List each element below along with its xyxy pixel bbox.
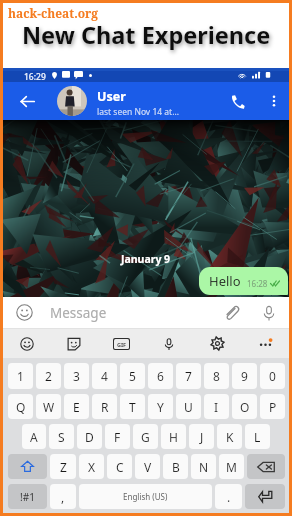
button[interactable]: V xyxy=(135,454,160,479)
staticText: 7 xyxy=(185,368,192,384)
button[interactable]: N xyxy=(191,454,216,479)
staticText: S xyxy=(58,429,65,445)
staticText: 9 xyxy=(241,368,248,384)
staticText: Z xyxy=(60,459,67,475)
button[interactable]: Z xyxy=(50,454,76,479)
button[interactable]: 2 xyxy=(36,363,61,389)
button[interactable]: 4 xyxy=(92,363,117,389)
button[interactable]: I xyxy=(204,394,229,419)
button[interactable]: Voice message xyxy=(249,297,289,328)
button[interactable]: Attach xyxy=(213,297,249,328)
staticText: V xyxy=(144,459,152,475)
staticText: hack-cheat.org xyxy=(8,5,99,21)
button[interactable]: More options xyxy=(263,82,285,120)
staticText: 16:29 xyxy=(24,71,46,83)
staticText: 16:28 xyxy=(247,278,268,289)
staticText: last seen Nov 14 at... xyxy=(97,106,180,118)
staticText: 0 xyxy=(269,368,276,384)
staticText: P xyxy=(269,399,277,415)
button[interactable]: 9 xyxy=(232,363,257,389)
button[interactable]: B xyxy=(163,454,188,479)
button[interactable]: D xyxy=(77,424,102,449)
staticText: E xyxy=(73,399,80,415)
button[interactable]: Stickers xyxy=(50,329,97,358)
staticText: Message xyxy=(50,304,217,322)
staticText: User xyxy=(97,88,126,105)
button[interactable]: English (US) xyxy=(79,484,212,509)
button[interactable]: J xyxy=(189,424,214,449)
button[interactable]: P xyxy=(260,394,285,419)
button[interactable]: Settings xyxy=(193,329,241,358)
button[interactable]: Emoji xyxy=(3,297,46,328)
button[interactable]: H xyxy=(161,424,186,449)
button[interactable]: key xyxy=(247,454,285,479)
button[interactable]: Profile photo xyxy=(57,86,87,116)
button[interactable]: 5 xyxy=(120,363,145,389)
button[interactable]: G xyxy=(133,424,158,449)
button[interactable]: Call xyxy=(225,82,249,120)
button[interactable]: Emoji xyxy=(3,329,50,358)
staticText: B xyxy=(172,459,180,475)
button[interactable]: key xyxy=(8,454,47,479)
staticText: L xyxy=(254,429,261,445)
staticText: X xyxy=(88,459,96,475)
staticText: !#1 xyxy=(20,490,35,504)
button[interactable]: U xyxy=(176,394,201,419)
staticText: 6 xyxy=(157,368,164,384)
staticText: O xyxy=(240,399,250,415)
button[interactable]: S xyxy=(49,424,74,449)
button[interactable]: K xyxy=(217,424,242,449)
button[interactable]: . xyxy=(215,484,242,509)
button[interactable]: Y xyxy=(148,394,173,419)
button[interactable]: A xyxy=(22,424,46,449)
button[interactable]: M xyxy=(219,454,244,479)
staticText: 5 xyxy=(129,368,136,384)
staticText: January 9 xyxy=(121,252,171,266)
button[interactable]: T xyxy=(120,394,145,419)
button[interactable]: X xyxy=(79,454,104,479)
staticText: A xyxy=(30,429,38,445)
staticText: H xyxy=(169,429,178,445)
button[interactable]: L xyxy=(245,424,270,449)
staticText: , xyxy=(61,489,65,505)
button[interactable]: Back xyxy=(11,82,43,120)
staticText: F xyxy=(114,429,121,445)
button[interactable]: GIF xyxy=(97,329,145,358)
button[interactable]: 1 xyxy=(8,363,33,389)
staticText: R xyxy=(101,399,109,415)
button[interactable]: Voice xyxy=(145,329,193,358)
button[interactable]: W xyxy=(36,394,61,419)
staticText: I xyxy=(214,399,219,415)
button[interactable]: 6 xyxy=(148,363,173,389)
button[interactable]: C xyxy=(107,454,132,479)
button[interactable]: Hello xyxy=(199,267,288,295)
staticText: C xyxy=(116,459,124,475)
staticText: G xyxy=(141,429,150,445)
button[interactable]: , xyxy=(50,484,76,509)
staticText: T xyxy=(129,399,136,415)
staticText: W xyxy=(43,399,55,415)
button[interactable]: R xyxy=(92,394,117,419)
staticText: Q xyxy=(16,399,26,415)
button[interactable]: 7 xyxy=(176,363,201,389)
button[interactable]: O xyxy=(232,394,257,419)
staticText: New Chat Experience xyxy=(22,19,271,51)
staticText: . xyxy=(227,489,231,505)
staticText: N xyxy=(199,459,209,475)
staticText: Hello xyxy=(209,272,241,290)
button[interactable]: 8 xyxy=(204,363,229,389)
staticText: 1 xyxy=(17,368,24,384)
button[interactable]: 0 xyxy=(260,363,285,389)
button[interactable]: 3 xyxy=(64,363,89,389)
button[interactable]: key xyxy=(8,484,47,509)
button[interactable]: Q xyxy=(8,394,33,419)
button[interactable]: More xyxy=(241,329,289,358)
button[interactable]: key xyxy=(245,484,285,509)
staticText: M xyxy=(226,459,237,475)
staticText: 4 xyxy=(101,368,108,384)
button[interactable]: E xyxy=(64,394,89,419)
staticText: K xyxy=(226,429,234,445)
button[interactable]: F xyxy=(105,424,130,449)
staticText: English (US) xyxy=(123,491,168,502)
staticText: D xyxy=(85,429,94,445)
